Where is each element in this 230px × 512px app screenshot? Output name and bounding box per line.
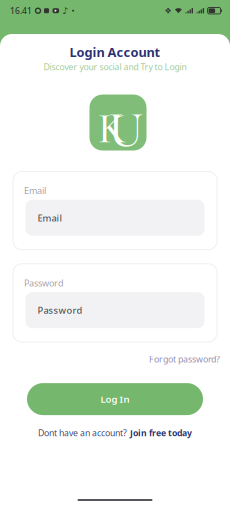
button[interactable]: Email xyxy=(13,200,217,236)
staticText: ❖ xyxy=(164,6,171,15)
staticText: Dont have an account? xyxy=(38,427,127,439)
staticText: Join free today xyxy=(130,427,192,439)
staticText: Discover your social and Try to Login xyxy=(43,61,186,73)
staticText: K xyxy=(98,103,126,154)
staticText: 16.41 xyxy=(10,5,32,16)
button[interactable]: Log In xyxy=(0,383,230,415)
staticText: ♪ xyxy=(63,5,69,16)
staticText: Password xyxy=(37,304,82,316)
staticText: Forgot password? xyxy=(149,353,220,365)
staticText: Log In xyxy=(100,393,129,406)
staticText: Email xyxy=(24,184,46,197)
button[interactable]: Forgot password? xyxy=(149,353,220,365)
button[interactable]: Password xyxy=(13,292,217,328)
staticText: U xyxy=(108,101,143,160)
staticText: Password xyxy=(24,277,64,289)
staticText: Email xyxy=(37,211,62,224)
button[interactable]: Dont have an account? xyxy=(38,427,192,439)
staticText: Login Account xyxy=(69,43,160,61)
